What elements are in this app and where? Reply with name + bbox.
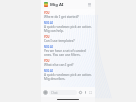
staticText: Yes we have a set of curated ones. You c… — [44, 49, 92, 57]
staticText: YOU — [44, 35, 50, 39]
button[interactable]: Apps — [88, 90, 93, 95]
button[interactable]: Attach — [43, 90, 48, 95]
button[interactable]: MIG AI — [44, 21, 92, 35]
staticText: YOU — [44, 59, 50, 63]
button[interactable]: Mig AI — [50, 2, 64, 8]
staticText: Mig AI — [50, 2, 64, 8]
button[interactable]: Emoji — [78, 90, 83, 95]
staticText: A quick rundown: pick an action. Mig des… — [44, 73, 92, 81]
staticText: A quick rundown: pick an action. Mig can… — [44, 25, 92, 33]
staticText: Chat — [51, 91, 58, 95]
staticText: What else can I get? — [44, 63, 74, 67]
staticText: YOU — [44, 11, 50, 15]
button[interactable]: YOU — [44, 11, 92, 21]
button[interactable]: YOU — [44, 59, 92, 69]
button[interactable]: YOU — [44, 35, 92, 45]
staticText: MIG AI — [44, 69, 53, 73]
staticText: MIG AI — [44, 21, 53, 25]
button[interactable]: MIG AI — [44, 69, 92, 83]
button[interactable]: Voice input — [83, 90, 88, 95]
staticText: MIG AI — [44, 45, 53, 49]
button[interactable]: Menu — [87, 2, 92, 7]
button[interactable]: Chat — [49, 90, 77, 95]
other: App logo — [44, 2, 48, 7]
button[interactable]: MIG AI — [44, 45, 92, 59]
staticText: Where do I get started? — [44, 15, 79, 19]
staticText: Can I use templates? — [44, 39, 75, 43]
